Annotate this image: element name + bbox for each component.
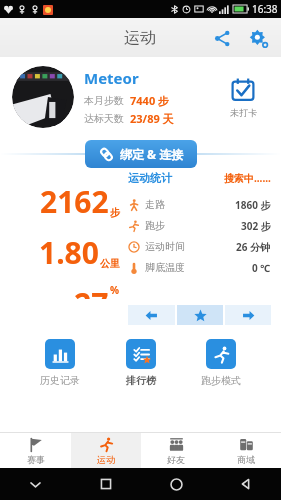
button[interactable]: Navigate [225,305,271,325]
staticText: 搜索中...... [224,171,271,185]
button[interactable]: Navigate [128,305,175,325]
staticText: 排行榜 [126,374,156,387]
staticText: 16:38 [252,2,278,16]
staticText: Meteor [84,68,139,88]
staticText: 历史记录 [40,374,80,387]
staticText: 公里 [100,257,120,270]
staticText: 未打卡 [230,107,257,118]
staticText: 7440 步 [130,93,170,108]
button[interactable]: Settings [243,23,273,53]
staticText: 运动时间 [145,240,185,253]
staticText: 本月步数 [84,94,124,107]
button[interactable]: 好友 [141,433,211,468]
staticText: 运动 [97,454,115,465]
button[interactable]: 绑定 & 连接 [85,140,197,168]
button[interactable]: Favorite [177,305,223,325]
button[interactable]: 走路 [128,194,271,215]
button[interactable]: 未打卡 [215,77,271,118]
staticText: 绑定 & 连接 [120,146,184,162]
staticText: 跑步 [145,219,165,232]
staticText: 跑步模式 [201,374,241,387]
staticText: 27 [74,283,109,299]
button[interactable]: 跑步 [128,215,271,236]
staticText: 脚底温度 [145,261,185,274]
button[interactable]: 历史记录 [25,339,95,387]
staticText: 商域 [237,454,255,465]
button[interactable]: Share [207,23,237,53]
staticText: % [110,283,120,296]
staticText: 1.80 [39,232,99,273]
button[interactable]: 赛事 [0,433,71,468]
staticText: 步 [110,206,120,219]
staticText: 走路 [145,198,165,211]
staticText: 2162 [40,181,109,222]
staticText: 赛事 [27,454,45,465]
staticText: 302 步 [241,219,271,233]
staticText: 运动 [124,28,156,48]
button[interactable] [12,66,74,128]
button[interactable]: 排行榜 [106,339,176,387]
staticText: 好友 [167,454,185,465]
button[interactable]: 运动时间 [128,236,271,257]
button[interactable]: 商域 [211,433,281,468]
button[interactable]: 跑步模式 [186,339,256,387]
staticText: 26 分钟 [236,240,271,254]
staticText: 1860 步 [235,198,271,212]
button[interactable]: 脚底温度 [128,257,271,278]
staticText: 运动统计 [128,171,172,185]
staticText: 0 ℃ [252,261,271,275]
staticText: 23/89 天 [130,111,174,126]
staticText: 达标天数 [84,112,124,125]
button[interactable]: 运动 [71,433,141,468]
